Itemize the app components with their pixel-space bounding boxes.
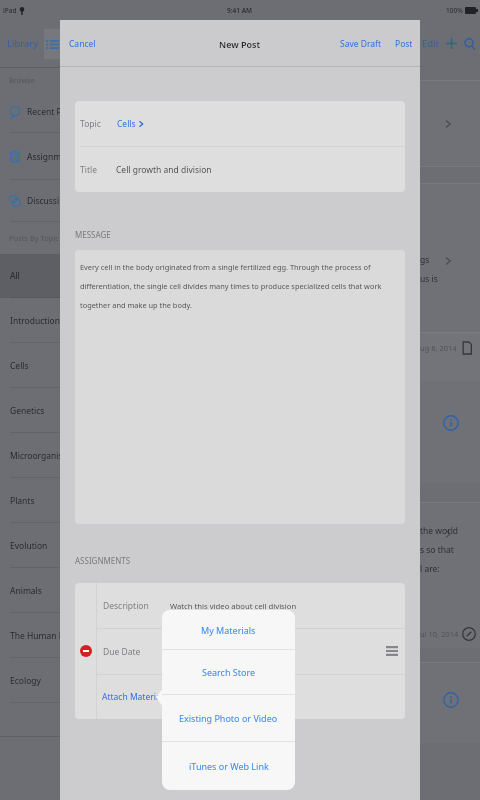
button[interactable]: Introduction xyxy=(0,298,60,343)
staticText: Evolution xyxy=(10,540,48,552)
staticText: Ecology xyxy=(10,675,41,687)
other: Location xyxy=(462,627,476,641)
staticText: Recent P xyxy=(27,106,60,118)
staticText: l are: xyxy=(420,563,440,575)
button[interactable]: Animals xyxy=(0,568,60,613)
button[interactable]: Library xyxy=(0,33,39,54)
staticText: My Materials xyxy=(201,624,256,636)
staticText: Description xyxy=(103,600,149,612)
other: Info xyxy=(443,415,459,431)
button[interactable]: Microorganism xyxy=(0,433,60,478)
staticText: Animals xyxy=(10,585,42,597)
staticText: ug 8, 2014 xyxy=(420,343,457,353)
button[interactable]: Topic xyxy=(75,101,405,146)
button[interactable]: Description xyxy=(97,583,405,628)
staticText: the world xyxy=(420,525,459,537)
button[interactable]: Search xyxy=(464,38,476,50)
button[interactable]: Evolution xyxy=(0,523,60,568)
button[interactable]: All xyxy=(0,254,60,298)
other: Info xyxy=(443,692,459,708)
staticText: differentiation, the single cell divides… xyxy=(80,281,382,291)
staticText: Due Date xyxy=(103,646,141,658)
staticText: 9:41 AM xyxy=(227,6,253,15)
staticText: Existing Photo or Video xyxy=(179,712,278,724)
staticText: Topic xyxy=(80,118,101,130)
button[interactable]: List view xyxy=(44,29,60,59)
staticText: Cells xyxy=(117,118,136,130)
staticText: 100% xyxy=(446,6,463,15)
staticText: Cancel xyxy=(69,38,96,50)
staticText: MESSAGE xyxy=(75,229,111,240)
button[interactable]: Existing Photo or Video xyxy=(162,695,295,741)
staticText: Edit xyxy=(422,37,440,50)
other: Document xyxy=(461,342,473,354)
staticText: All xyxy=(10,270,20,282)
button[interactable]: Assignme xyxy=(0,133,60,180)
button[interactable]: Ecology xyxy=(0,658,60,703)
button[interactable]: Genetics xyxy=(0,388,60,433)
staticText: Search Store xyxy=(202,666,256,678)
staticText: Library xyxy=(7,37,39,50)
staticText: gs xyxy=(420,254,430,266)
button[interactable]: Attach Material xyxy=(97,675,405,719)
button[interactable]: Due Date xyxy=(97,629,405,674)
button[interactable]: My Materials xyxy=(162,610,295,649)
staticText: Browse xyxy=(9,75,35,85)
staticText: Watch this video about cell division xyxy=(170,601,297,611)
staticText: ul 10, 2014 xyxy=(420,629,459,639)
staticText: Microorganism xyxy=(10,450,60,462)
button[interactable]: Every cell in the body originated from a… xyxy=(75,250,405,524)
staticText: Plants xyxy=(10,495,35,507)
staticText: ASSIGNMENTS xyxy=(75,555,131,566)
staticText: s so that xyxy=(420,544,454,556)
button[interactable]: Save Draft xyxy=(338,36,384,52)
staticText: Title xyxy=(80,164,97,176)
button[interactable]: Discussi xyxy=(0,180,60,222)
staticText: Cells xyxy=(10,360,29,372)
staticText: Posts By Topic xyxy=(9,233,59,243)
button[interactable]: The Human Bo xyxy=(0,613,60,658)
staticText: Introduction xyxy=(10,315,60,327)
button[interactable]: Plants xyxy=(0,478,60,523)
staticText: The Human Bo xyxy=(10,630,60,642)
staticText: Assignme xyxy=(27,151,60,163)
staticText: Post xyxy=(395,38,413,50)
staticText: us is xyxy=(420,273,438,285)
staticText: Genetics xyxy=(10,405,45,417)
button[interactable]: Delete assignment xyxy=(80,645,92,657)
staticText: iTunes or Web Link xyxy=(189,760,269,772)
button[interactable]: Cells xyxy=(0,343,60,388)
button[interactable]: Title xyxy=(75,147,405,192)
button[interactable]: Recent P xyxy=(0,91,60,133)
button[interactable]: Add xyxy=(446,38,457,49)
button[interactable]: Cancel xyxy=(67,36,98,52)
staticText: New Post xyxy=(219,38,261,50)
staticText: Cell growth and division xyxy=(116,164,212,176)
staticText: iPad xyxy=(3,6,17,15)
button[interactable]: Search Store xyxy=(162,650,295,694)
staticText: Every cell in the body originated from a… xyxy=(80,262,371,272)
staticText: Discussi xyxy=(27,195,60,207)
staticText: Attach Material xyxy=(102,691,163,703)
button[interactable]: Edit xyxy=(422,33,440,54)
staticText: Save Draft xyxy=(340,38,382,50)
other: Reorder xyxy=(386,646,398,656)
button[interactable]: Post xyxy=(393,36,415,52)
button[interactable]: iTunes or Web Link xyxy=(162,742,295,790)
staticText: together and make up the body. xyxy=(80,300,192,310)
